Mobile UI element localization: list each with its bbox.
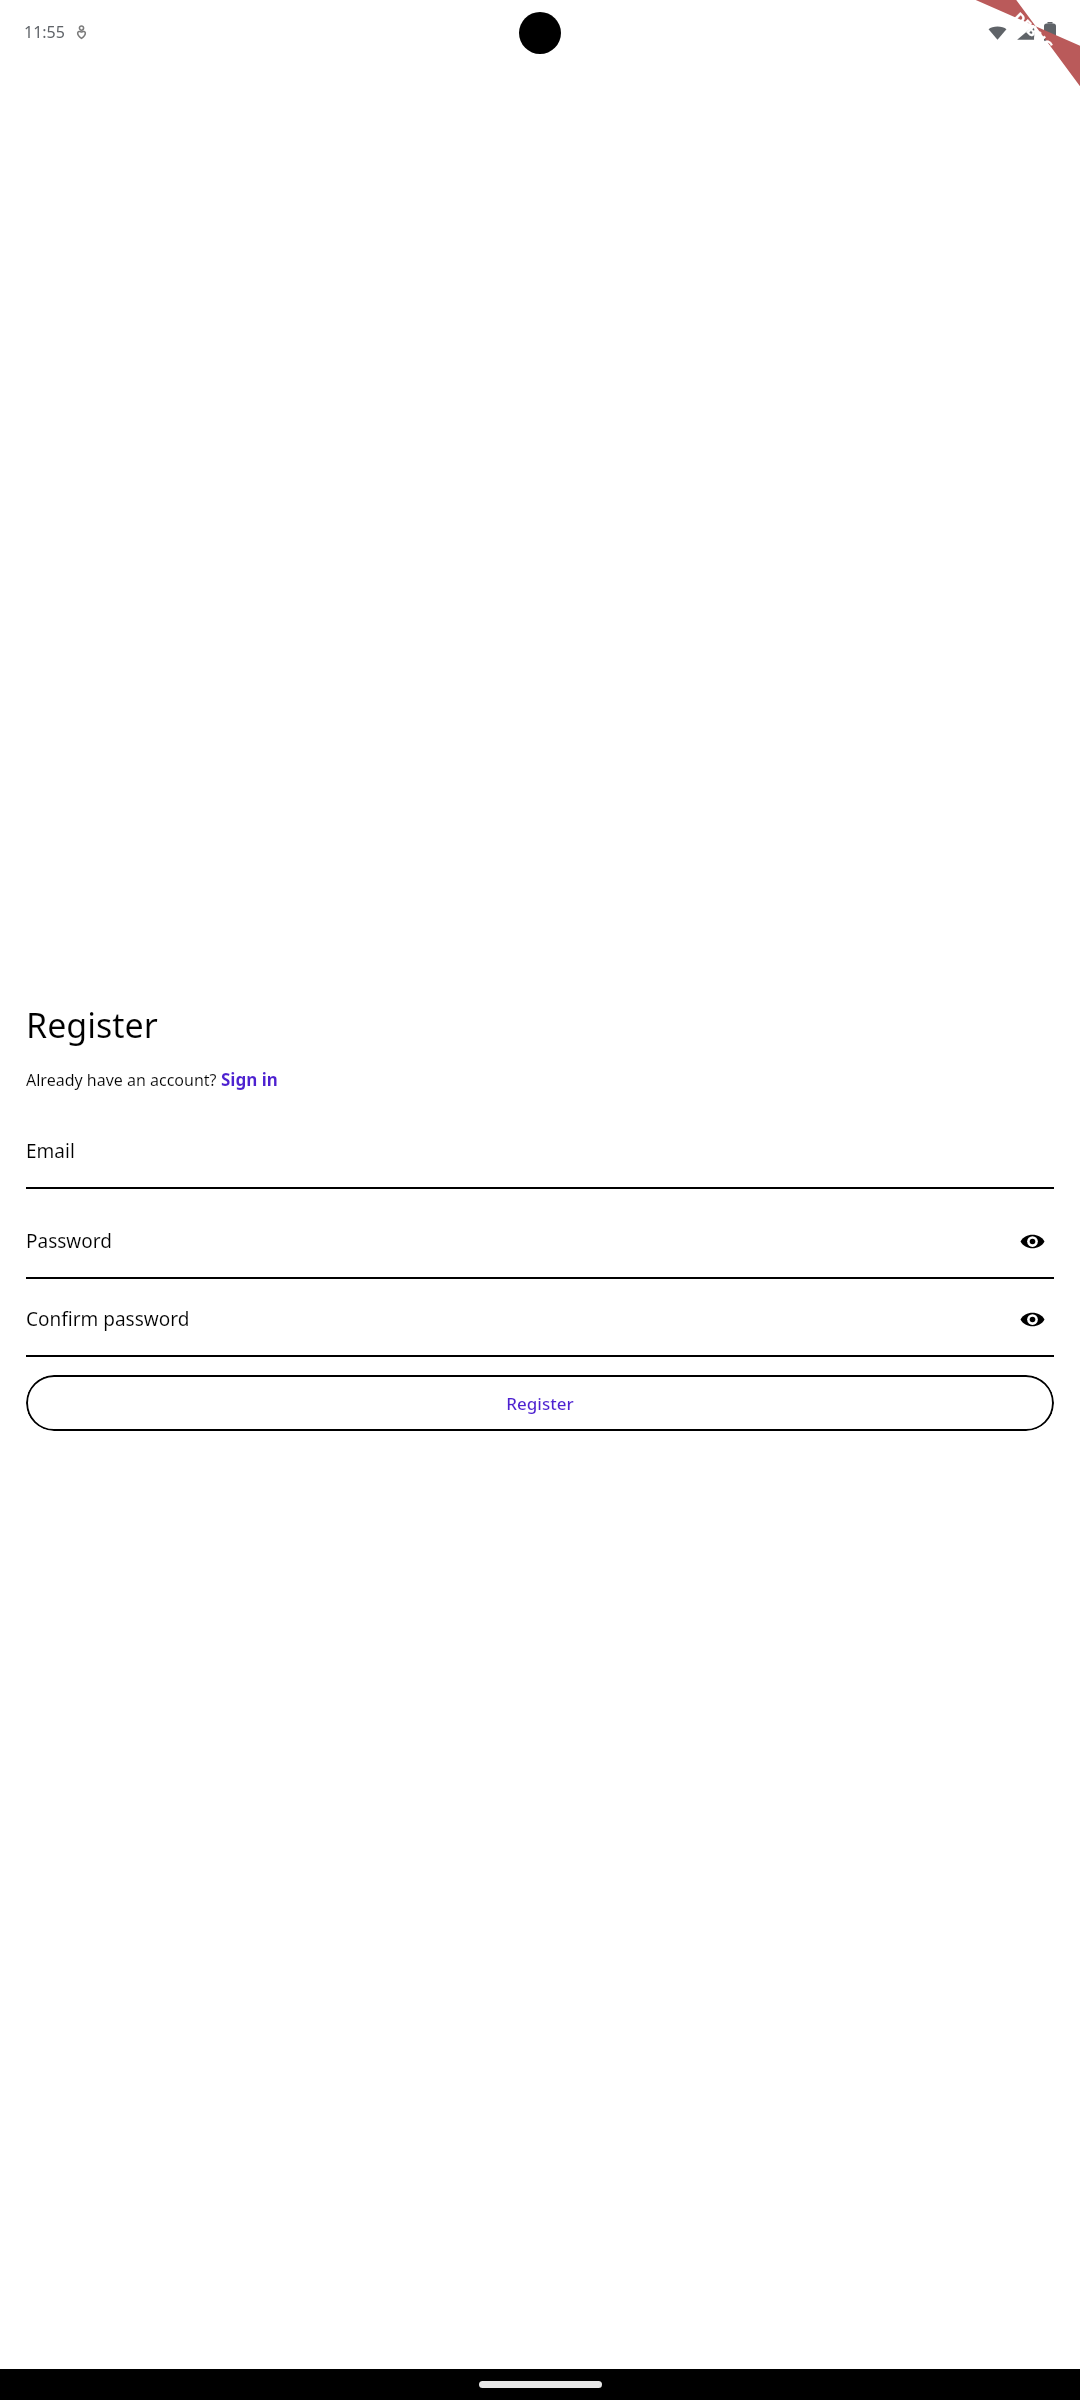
- button[interactable]: Email: [26, 1123, 1054, 1179]
- staticText: Sign in: [221, 1068, 278, 1091]
- button[interactable]: Register: [26, 1375, 1054, 1431]
- button[interactable]: Toggle password visibility: [1010, 1297, 1054, 1341]
- staticText: Register: [26, 1002, 158, 1048]
- staticText: 11:55: [24, 21, 65, 43]
- staticText: Email: [26, 1138, 75, 1164]
- button[interactable]: Sign in: [221, 1068, 278, 1091]
- staticText: Confirm password: [26, 1306, 190, 1332]
- staticText: Register: [506, 1392, 574, 1415]
- button[interactable]: Confirm password: [26, 1291, 1054, 1347]
- staticText: DEBUG: [1009, 7, 1058, 56]
- staticText: Password: [26, 1228, 112, 1254]
- button[interactable]: Toggle password visibility: [1010, 1219, 1054, 1263]
- button[interactable]: Password: [26, 1213, 1054, 1269]
- staticText: Already have an account?: [26, 1069, 221, 1091]
